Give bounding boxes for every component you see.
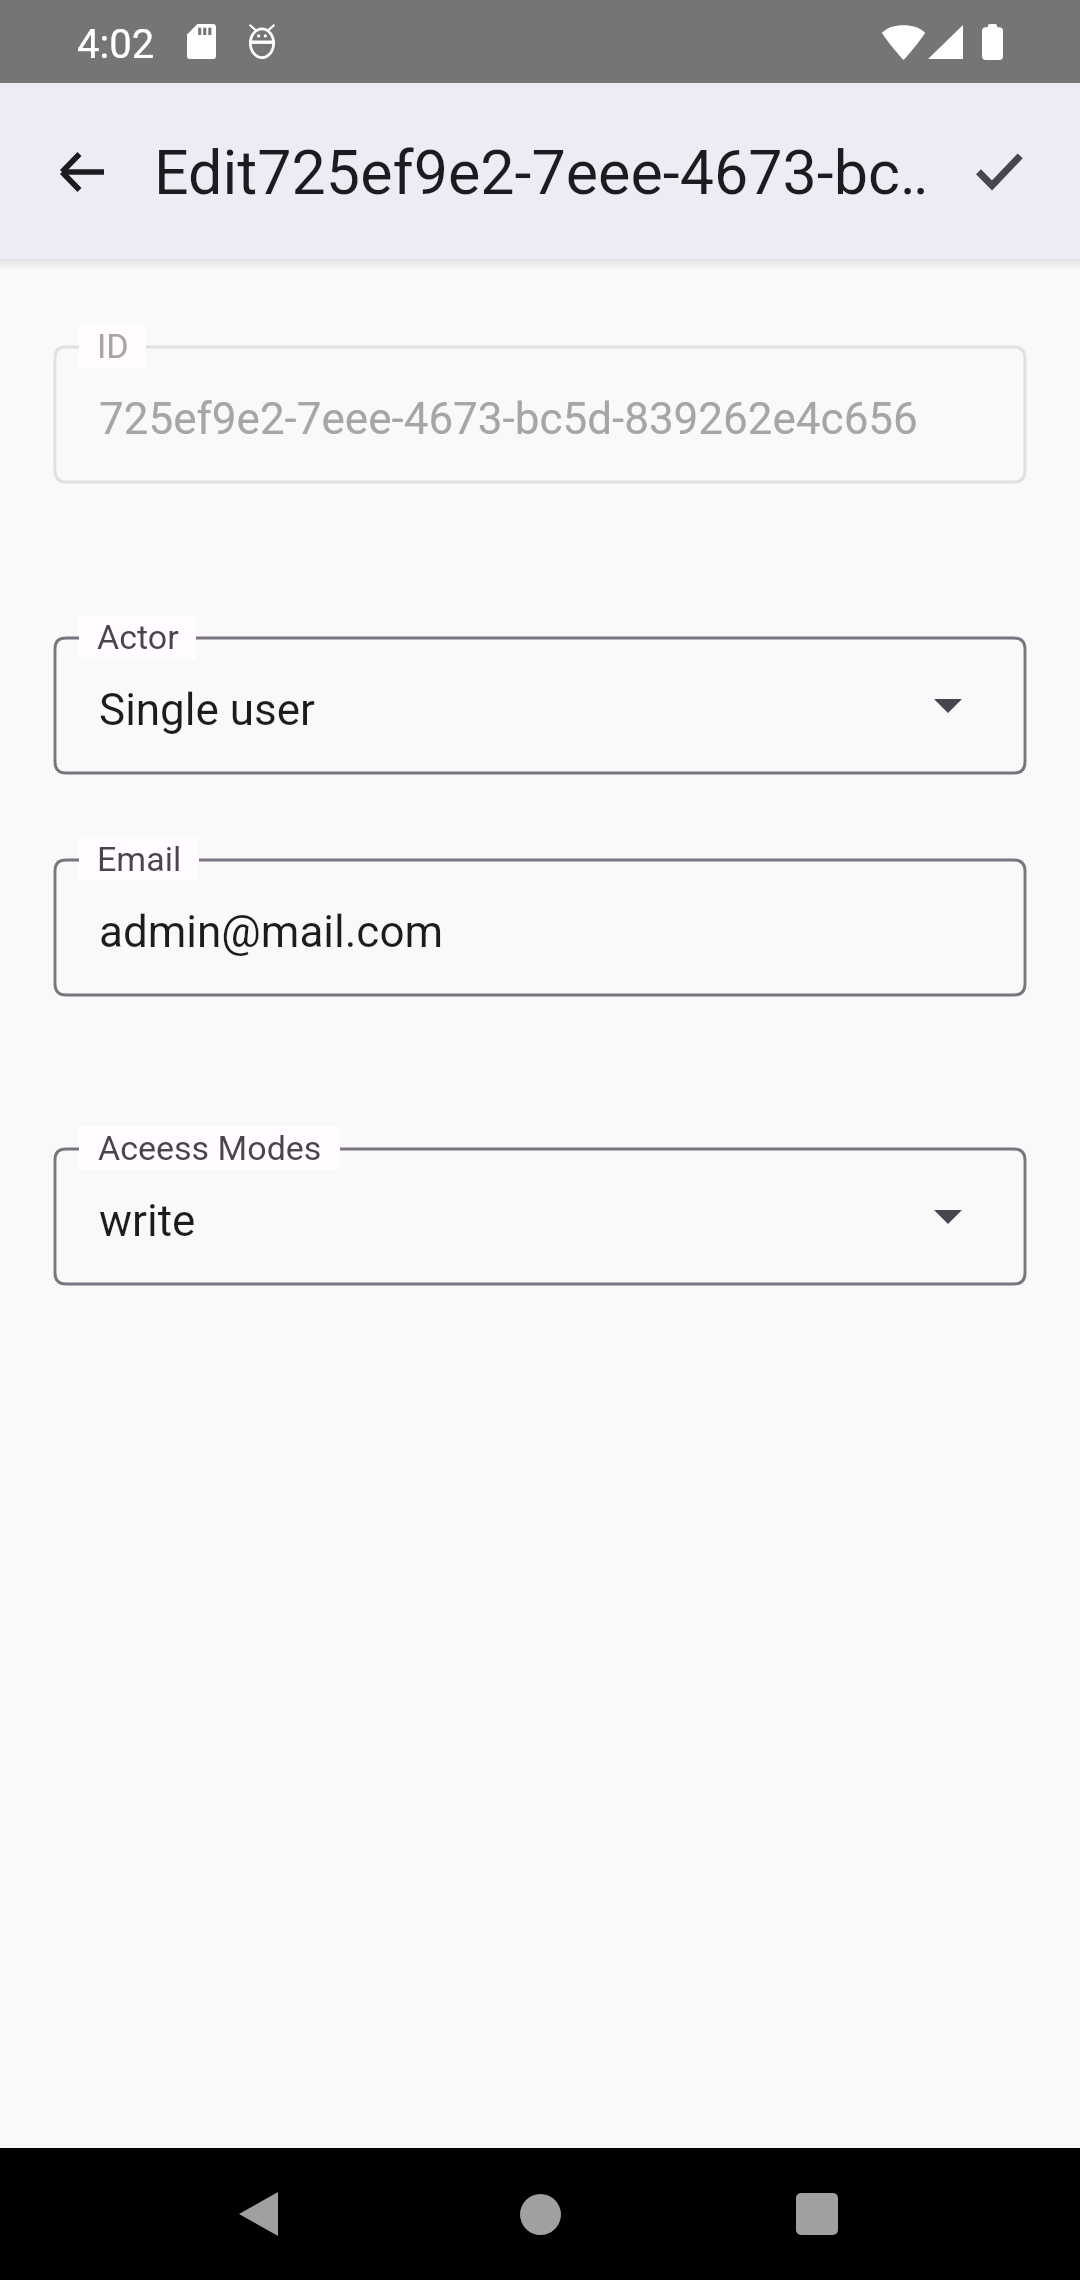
button[interactable]: Aceess Modes <box>55 1149 1025 1284</box>
button[interactable]: Save <box>955 127 1043 215</box>
staticText: ID <box>97 326 129 366</box>
button[interactable]: Navigate up <box>39 127 127 215</box>
button[interactable]: Home <box>492 2166 588 2262</box>
button[interactable]: Recent apps <box>769 2166 865 2262</box>
staticText: Aceess Modes <box>98 1128 322 1168</box>
button[interactable]: ID <box>55 347 1025 482</box>
staticText: Actor <box>97 617 179 657</box>
staticText: Single user <box>99 684 315 736</box>
staticText: write <box>99 1195 196 1247</box>
staticText: Edit725ef9e2-7eee-4673-bc5d-839262e4c656 <box>154 137 926 207</box>
button[interactable]: Actor <box>55 638 1025 773</box>
staticText: Email <box>97 839 182 879</box>
button[interactable]: Back <box>210 2166 306 2262</box>
staticText: 4:02 <box>77 21 155 68</box>
button[interactable]: Email <box>55 860 1025 995</box>
staticText: 725ef9e2-7eee-4673-bc5d-839262e4c656 <box>99 393 918 445</box>
staticText: admin@mail.com <box>99 906 444 958</box>
